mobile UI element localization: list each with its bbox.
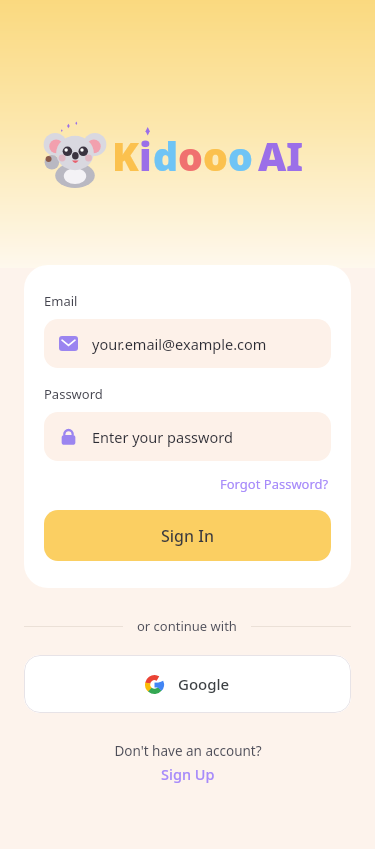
staticText: Google [178,674,230,694]
button[interactable]: Enter your password [44,412,331,461]
staticText: Password [44,385,103,403]
button[interactable]: Sign In [44,510,331,561]
staticText: Sign In [161,525,214,547]
staticText: Enter your password [92,427,233,447]
staticText: I [286,129,303,182]
other: Kidooo AI koala mascot [42,122,108,188]
staticText: or continue with [137,617,237,635]
staticText: Don't have an account? [114,742,262,760]
staticText: d [153,129,178,182]
staticText: your.email@example.com [92,334,267,354]
button[interactable]: your.email@example.com [44,319,331,368]
staticText: i [139,129,152,182]
staticText: o [203,129,228,182]
staticText: o [228,129,253,182]
staticText: Forgot Password? [220,475,329,493]
staticText: K [112,129,139,182]
staticText: A [258,129,286,182]
button[interactable]: Sign Up [157,763,219,785]
button[interactable]: Google [24,655,351,713]
staticText: o [178,129,203,182]
staticText: Email [44,292,78,310]
staticText: Sign Up [161,764,215,784]
button[interactable]: Forgot Password? [218,473,331,495]
